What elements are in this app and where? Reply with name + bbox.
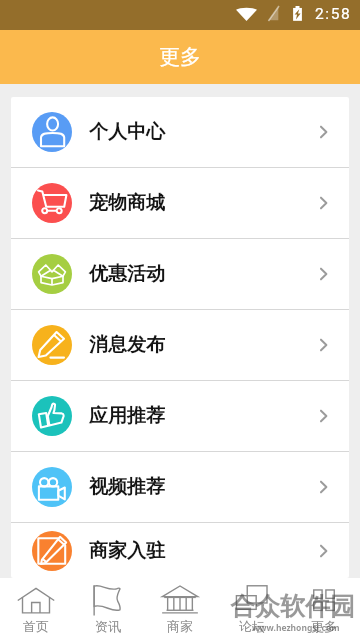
staticText: 更多 [159,44,201,70]
button[interactable]: 更多 [288,578,360,640]
staticText: 商家 [167,618,193,634]
staticText: 首页 [23,618,49,634]
button[interactable]: 消息发布 [11,310,349,380]
button[interactable]: 资讯 [72,578,144,640]
staticText: 优惠活动 [89,262,165,286]
button[interactable]: 宠物商城 [11,168,349,238]
button[interactable]: 优惠活动 [11,239,349,309]
button[interactable]: 个人中心 [11,97,349,167]
staticText: 更多 [311,618,337,634]
staticText: 宠物商城 [89,191,165,215]
staticText: 2:58 [315,5,352,23]
staticText: 商家入驻 [89,539,165,563]
button[interactable]: 首页 [0,578,72,640]
staticText: 消息发布 [89,333,165,357]
staticText: 视频推荐 [89,475,165,499]
button[interactable]: 应用推荐 [11,381,349,451]
button[interactable]: 视频推荐 [11,452,349,522]
button[interactable]: 商家入驻 [11,523,349,578]
staticText: 论坛 [239,618,265,634]
staticText: 资讯 [95,618,121,634]
button[interactable]: 论坛 [216,578,288,640]
button[interactable]: 商家 [144,578,216,640]
staticText: www.hezhongsj.com [252,622,340,634]
staticText: 应用推荐 [89,404,165,428]
staticText: 个人中心 [89,120,165,144]
staticText: 合众软件园 [230,591,355,622]
